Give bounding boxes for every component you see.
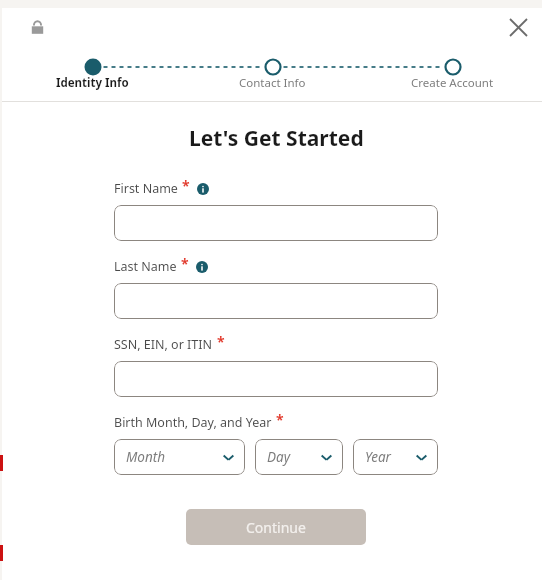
button[interactable]: Create Account <box>362 75 542 91</box>
staticText: Birth Month, Day, and Year <box>114 414 272 431</box>
button[interactable] <box>114 205 438 241</box>
staticText: SSN, EIN, or ITIN <box>114 336 213 353</box>
staticText: Create Account <box>411 75 494 91</box>
button[interactable]: Month <box>114 439 245 475</box>
staticText: Contact Info <box>239 75 306 91</box>
button[interactable]: Year <box>353 439 438 475</box>
staticText: Let's Get Started <box>189 124 364 153</box>
staticText: * <box>182 176 190 195</box>
staticText: Year <box>365 448 391 466</box>
button[interactable]: Contact Info <box>182 75 362 91</box>
button[interactable]: Secure connection <box>24 14 50 40</box>
button[interactable]: Day <box>255 439 343 475</box>
staticText: Month <box>126 448 166 466</box>
button[interactable] <box>114 283 438 319</box>
staticText: Continue <box>246 518 306 537</box>
button[interactable]: More information <box>195 181 211 197</box>
staticText: * <box>181 254 189 273</box>
button[interactable]: Identity Info <box>2 75 182 91</box>
staticText: * <box>217 332 225 351</box>
staticText: * <box>276 410 284 429</box>
staticText: Day <box>267 448 290 466</box>
button[interactable] <box>114 361 438 397</box>
button[interactable]: Close <box>500 9 536 45</box>
staticText: First Name <box>114 180 178 197</box>
button[interactable]: More information <box>194 259 210 275</box>
staticText: Identity Info <box>56 75 129 91</box>
staticText: Last Name <box>114 258 177 275</box>
button[interactable]: Continue <box>186 509 366 545</box>
